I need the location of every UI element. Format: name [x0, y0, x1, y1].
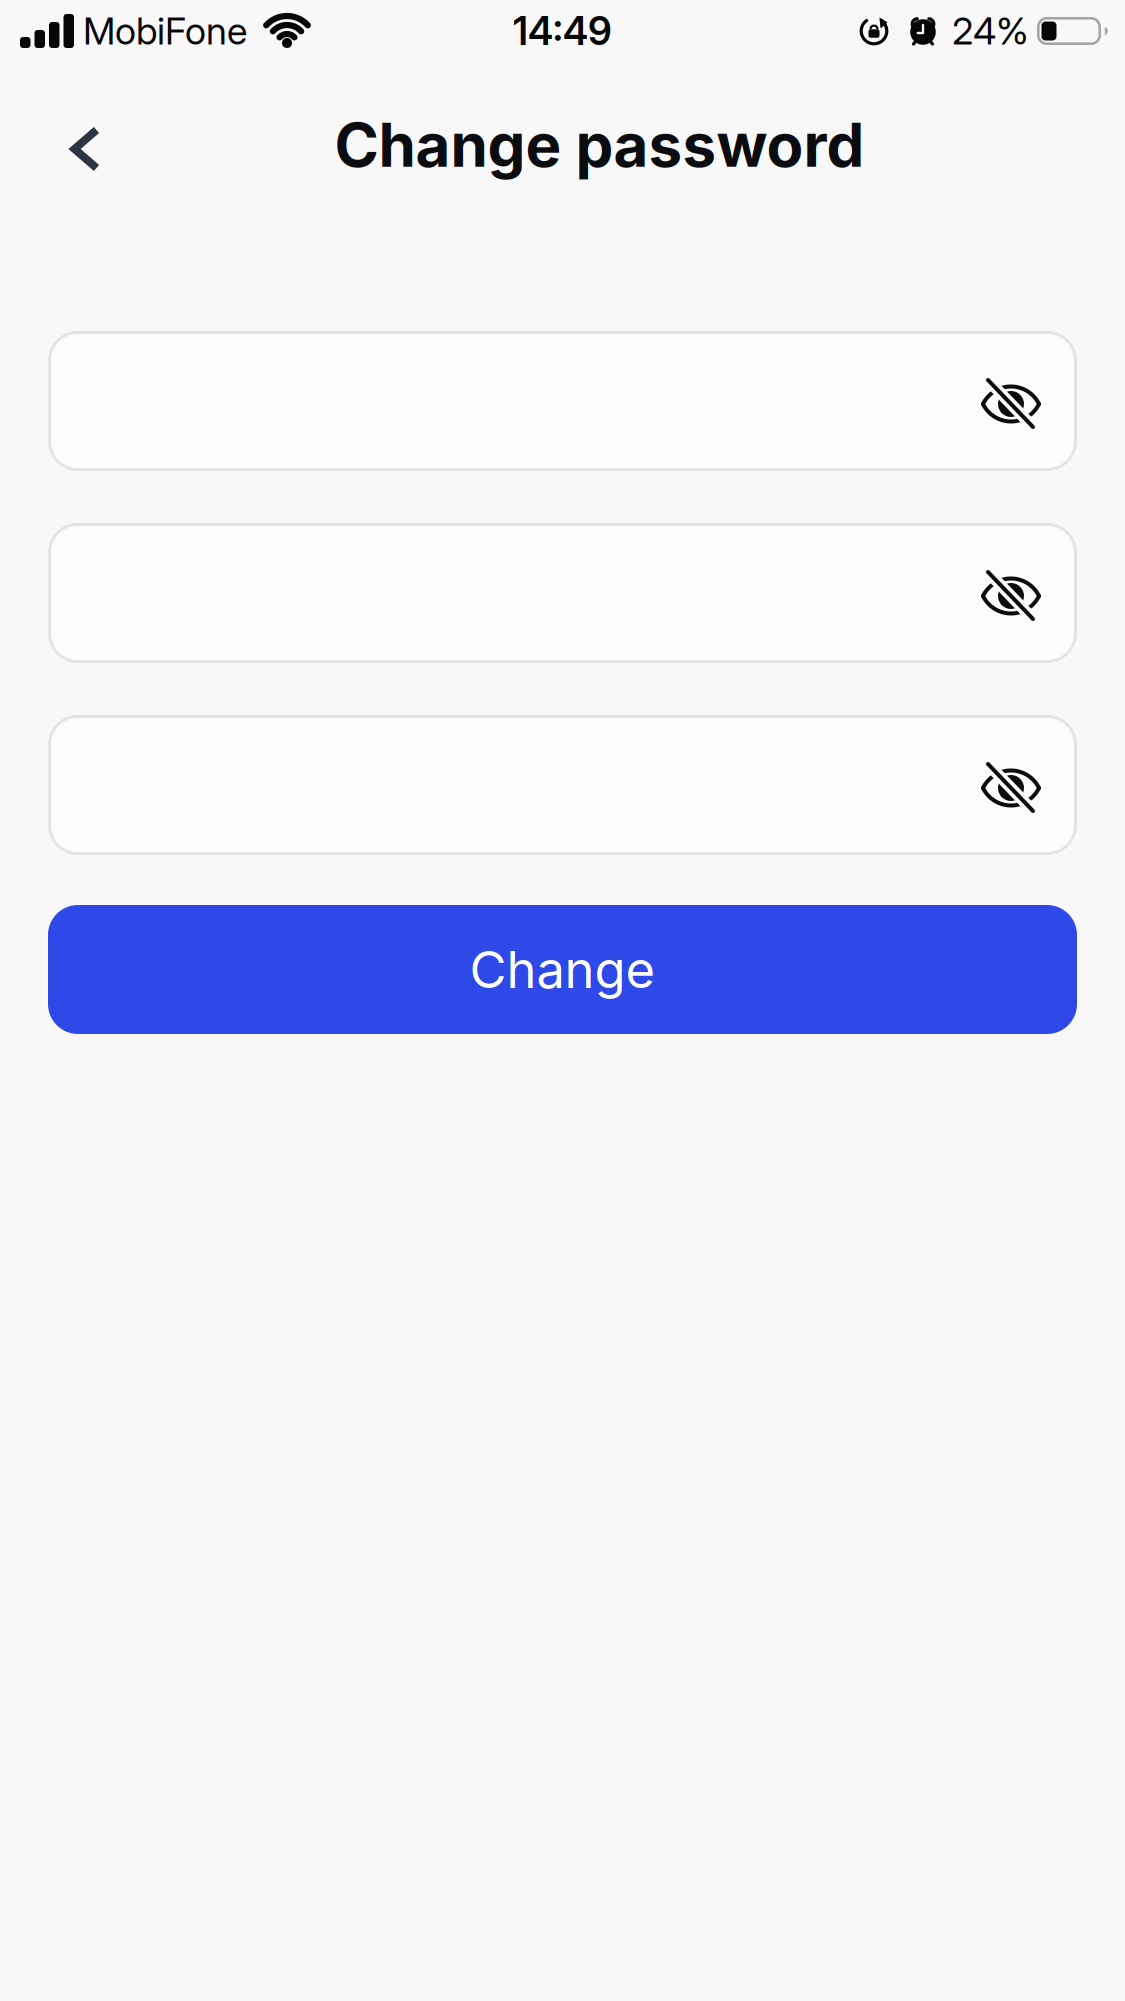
- button[interactable]: Show password: [979, 756, 1043, 820]
- staticText: Change password: [334, 110, 864, 180]
- staticText: 24%: [952, 9, 1029, 53]
- staticText: MobiFone: [83, 9, 247, 53]
- button[interactable]: Back: [0, 106, 131, 192]
- button[interactable]: Show password: [979, 372, 1043, 436]
- staticText: Change: [469, 940, 655, 999]
- button[interactable]: Change: [48, 905, 1077, 1034]
- button[interactable]: Show password: [979, 564, 1043, 628]
- staticText: 14:49: [513, 8, 612, 54]
